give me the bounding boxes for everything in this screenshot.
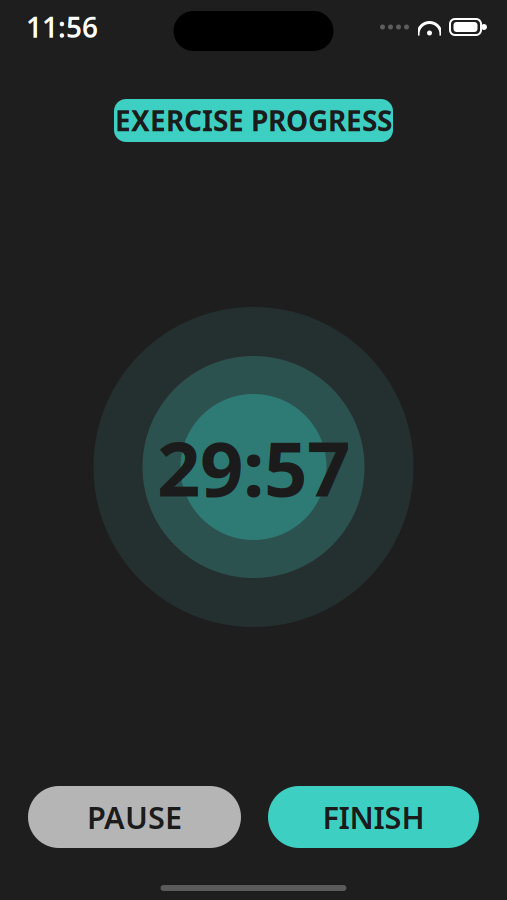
button[interactable]: EXERCISE PROGRESS [114,99,393,142]
staticText: FINISH [322,797,424,837]
staticText: EXERCISE PROGRESS [115,102,392,139]
staticText: 29:57 [157,416,350,517]
button[interactable]: FINISH [268,786,479,848]
button[interactable]: PAUSE [28,786,241,848]
staticText: 11:56 [26,8,98,46]
staticText: PAUSE [87,797,182,837]
